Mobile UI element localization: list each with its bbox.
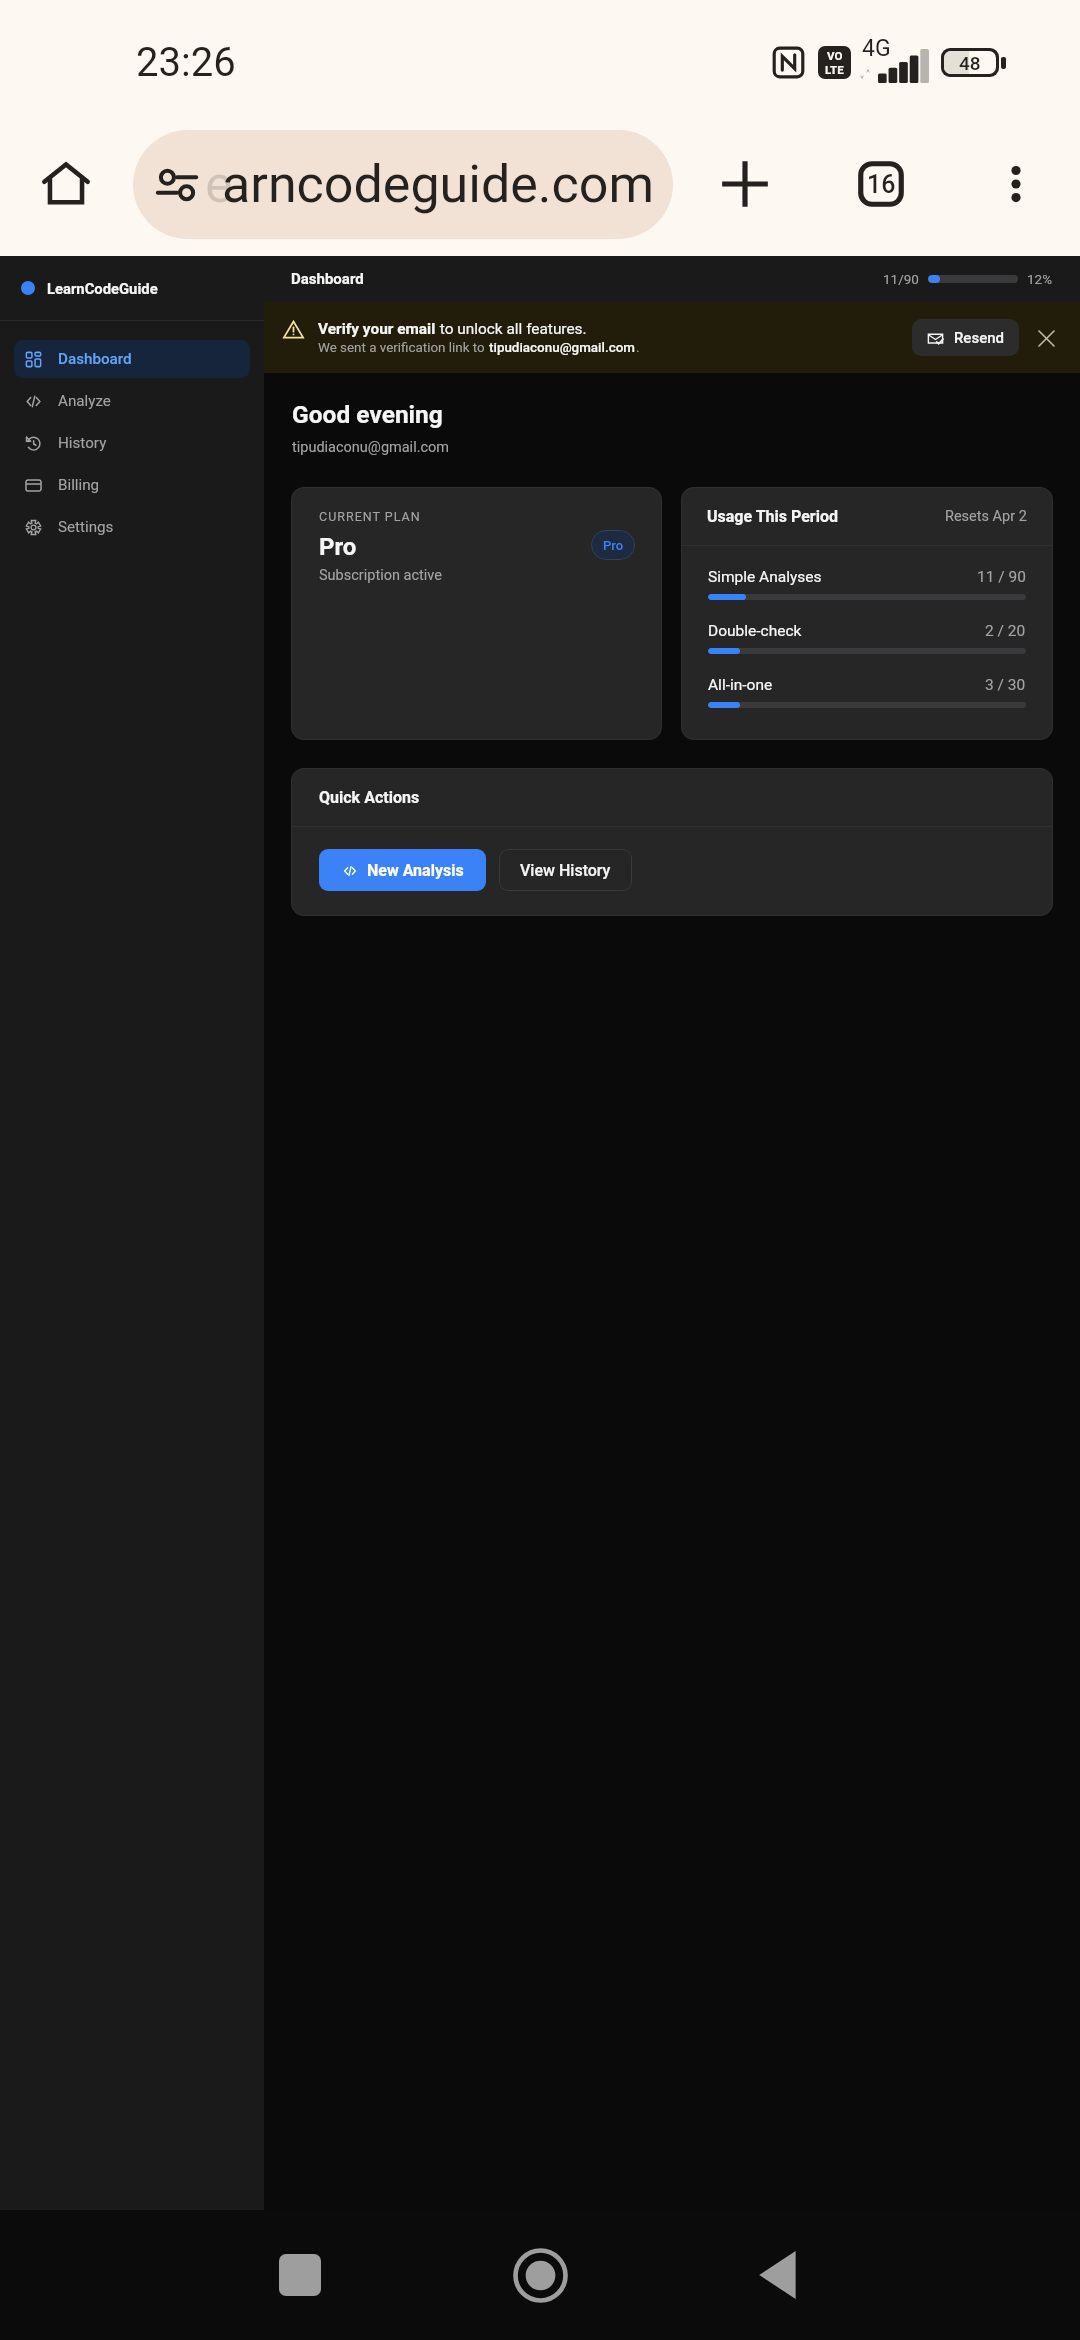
staticText: All-in-one bbox=[708, 676, 773, 694]
button[interactable]: e bbox=[133, 130, 673, 239]
button[interactable]: Tabs: 16 bbox=[845, 148, 917, 220]
staticText: e bbox=[205, 154, 233, 215]
staticText: View History bbox=[520, 861, 611, 880]
staticText: We sent a verification link to bbox=[318, 340, 489, 356]
staticText: . bbox=[636, 340, 640, 356]
button[interactable]: History bbox=[14, 424, 250, 462]
button[interactable]: New tab bbox=[709, 148, 781, 220]
staticText: 11/90 bbox=[883, 271, 919, 287]
button[interactable]: Back bbox=[738, 2233, 822, 2317]
staticText: LTE bbox=[825, 63, 844, 76]
staticText: Quick Actions bbox=[319, 788, 420, 807]
button[interactable]: New Analysis bbox=[319, 849, 486, 891]
staticText: 2 / 20 bbox=[985, 622, 1026, 640]
staticText: to unlock all features. bbox=[436, 320, 587, 338]
staticText: tipudiaconu@gmail.com bbox=[489, 340, 636, 356]
staticText: Settings bbox=[58, 518, 114, 536]
staticText: Usage This Period bbox=[707, 507, 838, 526]
staticText: Double-check bbox=[708, 622, 802, 640]
staticText: Dashboard bbox=[291, 270, 364, 288]
button[interactable]: View History bbox=[499, 849, 632, 891]
staticText: Subscription active bbox=[319, 567, 442, 584]
button[interactable]: Analyze bbox=[14, 382, 250, 420]
button[interactable]: Dismiss bbox=[1028, 320, 1064, 356]
button[interactable]: Home bbox=[30, 148, 102, 220]
staticText: Verify your email bbox=[318, 320, 436, 338]
staticText: Resend bbox=[954, 329, 1005, 347]
staticText: Simple Analyses bbox=[708, 568, 822, 586]
staticText: Dashboard bbox=[58, 350, 132, 368]
button[interactable]: Resend bbox=[912, 319, 1019, 356]
staticText: CURRENT PLAN bbox=[319, 509, 421, 524]
staticText: 12% bbox=[1027, 271, 1053, 287]
staticText: arncodeguide.com bbox=[222, 154, 654, 215]
button[interactable]: Dashboard bbox=[14, 340, 250, 378]
staticText: Analyze bbox=[58, 392, 111, 410]
staticText: Pro bbox=[319, 533, 357, 561]
staticText: New Analysis bbox=[367, 861, 464, 880]
staticText: 16 bbox=[867, 170, 896, 199]
staticText: 23:26 bbox=[136, 39, 236, 86]
button[interactable]: Recents bbox=[258, 2233, 342, 2317]
staticText: Billing bbox=[58, 476, 100, 494]
staticText: 48 bbox=[959, 52, 981, 74]
staticText: 4G bbox=[862, 35, 891, 62]
staticText: History bbox=[58, 434, 107, 452]
button[interactable]: Billing bbox=[14, 466, 250, 504]
staticText: Resets Apr 2 bbox=[945, 508, 1027, 525]
staticText: VO bbox=[827, 49, 843, 62]
button[interactable]: Settings bbox=[14, 508, 250, 546]
staticText: Good evening bbox=[292, 400, 443, 429]
button[interactable]: Home bbox=[498, 2233, 582, 2317]
staticText: 3 / 30 bbox=[985, 676, 1026, 694]
button[interactable]: CURRENT PLAN bbox=[291, 487, 662, 740]
staticText: tipudiaconu@gmail.com bbox=[292, 439, 450, 456]
staticText: 11 / 90 bbox=[977, 568, 1026, 586]
button[interactable]: More options bbox=[980, 148, 1052, 220]
staticText: Pro bbox=[603, 538, 624, 553]
staticText: LearnCodeGuide bbox=[47, 280, 158, 297]
